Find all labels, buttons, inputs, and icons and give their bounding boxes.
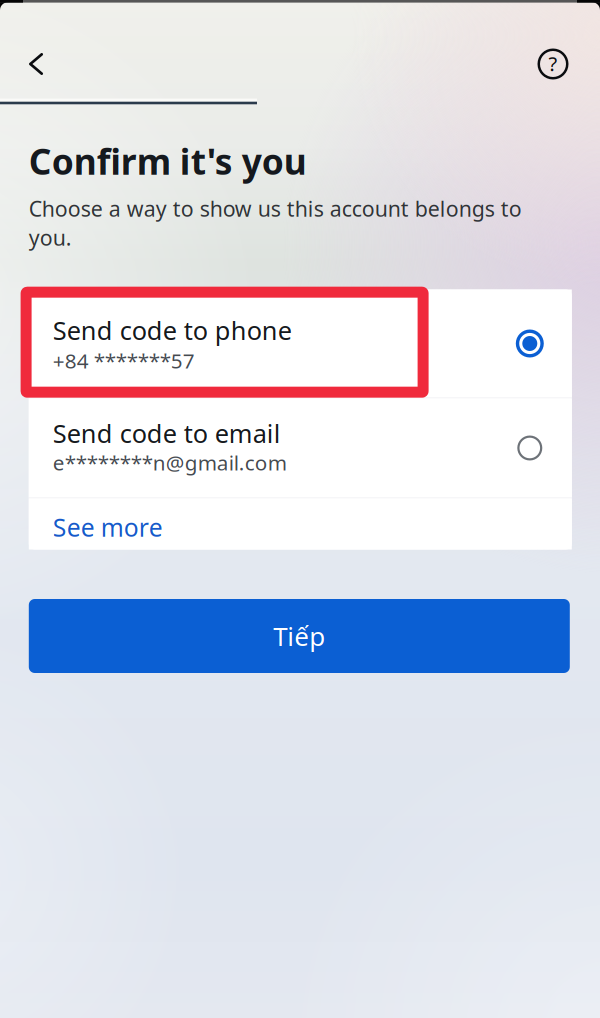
staticText: See more	[53, 510, 163, 544]
button[interactable]: Back	[8, 36, 64, 92]
staticText: ?	[548, 50, 557, 77]
staticText: +84 *******57	[53, 346, 195, 375]
staticText: Confirm it's you	[29, 137, 307, 185]
staticText: Tiếp	[273, 618, 325, 654]
staticText: Send code to phone	[53, 313, 292, 347]
staticText: e********n@gmail.com	[53, 448, 287, 477]
button[interactable]: Send code to phone	[29, 289, 572, 397]
staticText: Choose a way to show us this account bel…	[29, 194, 522, 252]
button[interactable]: Help	[528, 39, 578, 89]
button[interactable]: Tiếp	[29, 599, 570, 673]
staticText: Send code to email	[53, 416, 281, 450]
button[interactable]: See more	[29, 498, 572, 549]
button[interactable]: Send code to email	[29, 398, 572, 497]
